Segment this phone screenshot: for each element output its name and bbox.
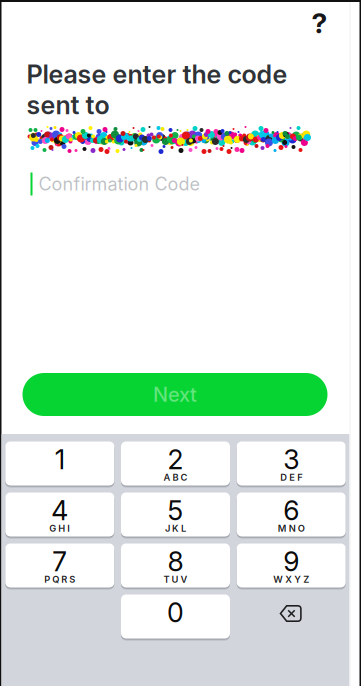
button[interactable]: 2 bbox=[121, 441, 230, 486]
staticText: 7 bbox=[52, 545, 67, 578]
staticText: 0 bbox=[167, 596, 184, 629]
staticText: J K L bbox=[165, 523, 186, 534]
button[interactable]: 4 bbox=[5, 492, 114, 537]
button[interactable]: 8 bbox=[121, 543, 230, 588]
button[interactable]: Help bbox=[297, 1, 341, 45]
button[interactable]: 3 bbox=[237, 441, 346, 486]
staticText: T U V bbox=[163, 574, 187, 585]
staticText: 1 bbox=[55, 443, 65, 476]
staticText: W X Y Z bbox=[273, 574, 309, 585]
staticText: Next bbox=[153, 382, 197, 407]
staticText: 6 bbox=[283, 494, 299, 527]
staticText: 5 bbox=[167, 494, 183, 527]
button[interactable]: 0 bbox=[121, 594, 230, 639]
button[interactable]: 1 bbox=[5, 441, 114, 486]
staticText: 4 bbox=[51, 494, 68, 527]
staticText: M N O bbox=[278, 523, 305, 534]
staticText: ? bbox=[311, 6, 327, 40]
staticText: P Q R S bbox=[44, 574, 75, 585]
button[interactable]: 6 bbox=[237, 492, 346, 537]
staticText: 2 bbox=[167, 443, 183, 476]
staticText: 3 bbox=[283, 443, 299, 476]
staticText: A B C bbox=[163, 472, 187, 483]
button[interactable]: 7 bbox=[5, 543, 114, 588]
staticText: 9 bbox=[283, 545, 299, 578]
button[interactable]: Next bbox=[22, 373, 327, 416]
button[interactable]: 9 bbox=[237, 543, 346, 588]
button[interactable]: 5 bbox=[121, 492, 230, 537]
staticText: G H I bbox=[49, 523, 70, 534]
staticText: Confirmation Code bbox=[38, 173, 199, 195]
staticText: D E F bbox=[280, 472, 302, 483]
staticText: Please enter the code sent to bbox=[26, 59, 287, 120]
staticText: 8 bbox=[167, 545, 183, 578]
button[interactable]: Delete bbox=[237, 594, 346, 639]
